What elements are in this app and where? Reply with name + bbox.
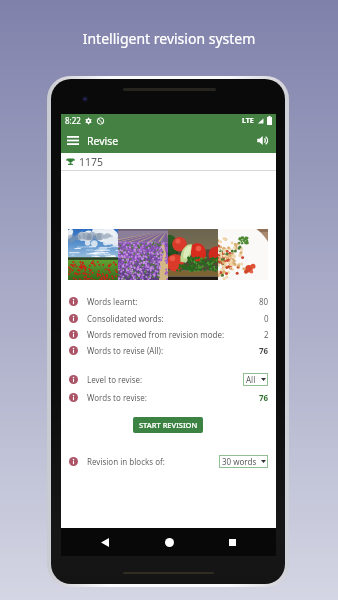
button[interactable]: Home bbox=[149, 528, 189, 556]
staticText: 2 bbox=[264, 329, 269, 340]
button[interactable]: Open navigation menu bbox=[61, 127, 85, 153]
staticText: LTE bbox=[242, 116, 254, 126]
staticText: 30 words bbox=[222, 456, 257, 467]
staticText: Words to revise: bbox=[87, 392, 148, 403]
staticText: Words learnt: bbox=[87, 296, 138, 307]
staticText: Consolidated words: bbox=[87, 313, 164, 324]
staticText: All bbox=[246, 374, 256, 385]
button[interactable]: Consolidated words: bbox=[61, 310, 276, 326]
staticText: Intelligent revision system bbox=[0, 29, 338, 48]
button[interactable]: 30 words bbox=[219, 455, 268, 468]
staticText: 0 bbox=[264, 313, 269, 324]
staticText: 76 bbox=[259, 345, 269, 356]
staticText: 8:22 bbox=[65, 115, 81, 126]
button[interactable]: 1175 bbox=[61, 153, 276, 170]
button[interactable]: Recents bbox=[212, 528, 252, 556]
button[interactable]: Words removed from revision mode: bbox=[61, 326, 276, 342]
staticText: START REVISION bbox=[139, 420, 198, 430]
staticText: Revise bbox=[87, 134, 119, 148]
staticText: 1175 bbox=[79, 155, 104, 169]
staticText: 76 bbox=[259, 392, 269, 403]
button[interactable]: Back bbox=[85, 528, 125, 556]
button[interactable]: All bbox=[243, 373, 268, 386]
button[interactable]: Words to revise (All): bbox=[61, 342, 276, 358]
button[interactable]: Words learnt: bbox=[61, 293, 276, 309]
staticText: Words removed from revision mode: bbox=[87, 329, 225, 340]
button[interactable]: Words to revise: bbox=[61, 389, 276, 405]
staticText: Level to revise: bbox=[87, 374, 143, 385]
staticText: Revision in blocks of: bbox=[87, 456, 165, 467]
button[interactable]: START REVISION bbox=[133, 417, 203, 433]
button[interactable]: Sound bbox=[250, 127, 276, 153]
staticText: 80 bbox=[259, 296, 269, 307]
staticText: Words to revise (All): bbox=[87, 345, 164, 356]
